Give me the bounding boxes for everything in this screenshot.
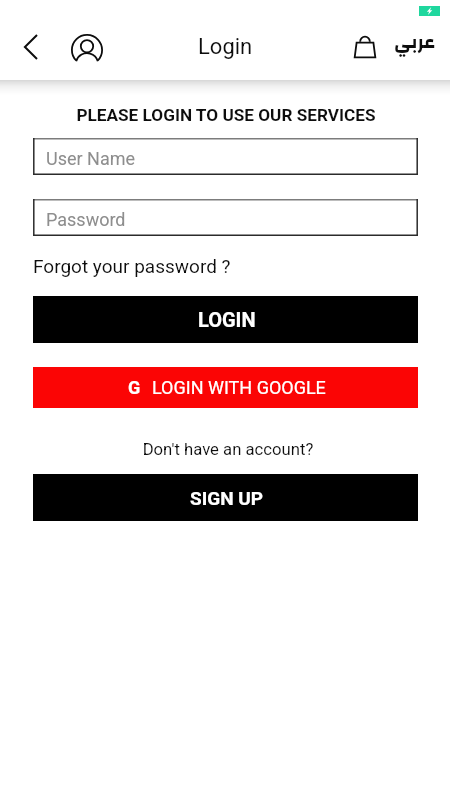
staticText: Forgot your password ? xyxy=(33,255,231,277)
button[interactable]: G xyxy=(33,367,418,408)
button[interactable]: عربي xyxy=(392,24,436,60)
staticText: Don't have an account? xyxy=(3,440,450,460)
staticText: Password xyxy=(46,209,126,230)
button[interactable]: Account xyxy=(69,32,105,68)
staticText: PLEASE LOGIN TO USE OUR SERVICES xyxy=(1,105,450,125)
staticText: G xyxy=(128,377,141,398)
staticText: عربي xyxy=(394,25,435,60)
staticText: User Name xyxy=(46,148,136,169)
button[interactable]: Back xyxy=(12,29,48,65)
staticText: SIGN UP xyxy=(190,487,264,509)
button[interactable]: Cart xyxy=(347,29,383,65)
button[interactable]: User Name xyxy=(33,138,418,175)
staticText: LOGIN xyxy=(198,308,256,331)
button[interactable]: SIGN UP xyxy=(33,474,418,521)
staticText: LOGIN WITH GOOGLE xyxy=(152,377,326,398)
button[interactable]: Login xyxy=(198,34,253,60)
button[interactable]: Password xyxy=(33,199,418,236)
button[interactable]: Forgot your password ? xyxy=(33,255,231,277)
button[interactable]: LOGIN xyxy=(33,296,418,343)
